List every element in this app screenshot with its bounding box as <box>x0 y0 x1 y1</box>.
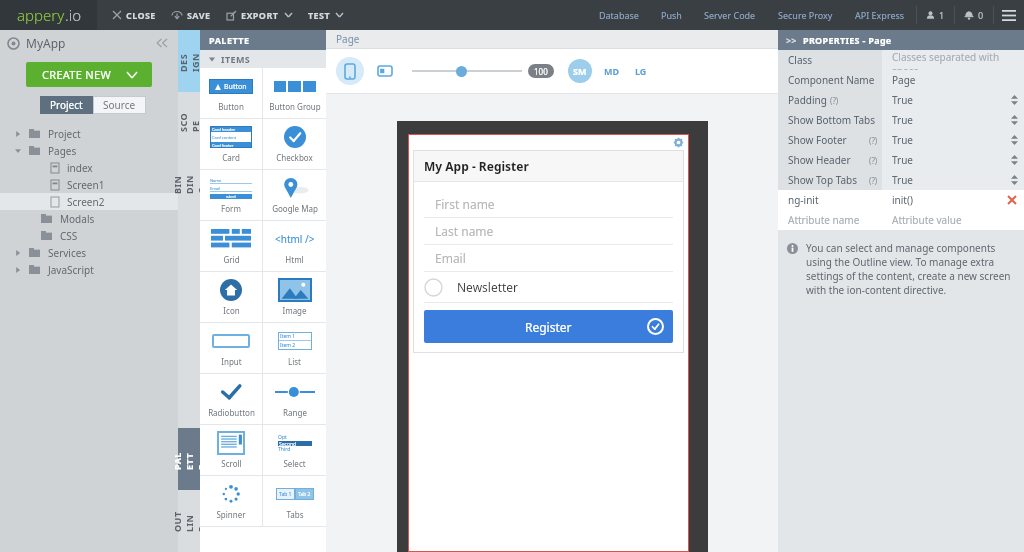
staticText: Component Name <box>788 73 875 87</box>
button[interactable]: Database <box>588 0 650 30</box>
button[interactable]: Project <box>0 125 178 142</box>
button[interactable]: Screen2 <box>0 193 178 210</box>
button[interactable]: Google Map <box>263 170 326 220</box>
button[interactable]: Tab 1 <box>263 476 326 526</box>
button[interactable]: Collapse <box>154 36 170 50</box>
button[interactable]: Spinner <box>200 476 262 526</box>
button[interactable]: Item 1 <box>263 323 326 373</box>
button[interactable]: OUTLINE <box>178 490 200 552</box>
button[interactable]: JavaScript <box>0 261 178 278</box>
button[interactable]: LG <box>632 62 650 80</box>
staticText: Checkbox <box>276 152 313 163</box>
button[interactable]: Source <box>93 96 146 114</box>
button[interactable]: Range <box>263 374 326 424</box>
staticText: Item 2 <box>280 342 296 349</box>
button[interactable]: First name <box>413 191 684 218</box>
button[interactable]: SM <box>568 59 592 83</box>
button[interactable]: BINDING <box>178 150 200 216</box>
button[interactable]: Button <box>200 68 262 118</box>
button[interactable]: CSS <box>0 227 178 244</box>
button[interactable]: Menu <box>994 0 1024 30</box>
staticText: Select <box>283 458 306 469</box>
button[interactable]: TEST <box>300 0 351 30</box>
button[interactable]: Card header <box>200 119 262 169</box>
staticText: Page <box>336 32 360 46</box>
staticText: Form <box>221 203 241 214</box>
button[interactable]: Classes separated with space <box>882 50 1024 70</box>
button[interactable]: Remove attribute <box>1008 196 1016 204</box>
button[interactable]: True <box>882 110 1024 130</box>
button[interactable]: Scroll <box>200 425 262 475</box>
button[interactable]: Portrait <box>336 57 364 85</box>
staticText: Database <box>599 9 639 21</box>
staticText: Project <box>48 127 81 141</box>
button[interactable]: Screen1 <box>0 176 178 193</box>
button[interactable]: PALETTE <box>178 428 200 490</box>
button[interactable]: EXPORT <box>219 0 300 30</box>
staticText: TEST <box>308 9 330 21</box>
staticText: Image <box>282 305 307 316</box>
button[interactable]: Server Code <box>693 0 767 30</box>
button[interactable]: Email <box>413 245 684 272</box>
button[interactable]: Icon <box>200 272 262 322</box>
button[interactable]: Pages <box>0 142 178 159</box>
button[interactable]: MD <box>601 62 623 80</box>
button[interactable]: True <box>882 170 1024 190</box>
button[interactable]: Checkbox <box>263 119 326 169</box>
staticText: Server Code <box>704 9 756 21</box>
staticText: Card footer <box>212 143 234 148</box>
button[interactable] <box>412 61 522 81</box>
staticText: Attribute name <box>788 213 860 227</box>
staticText: Grid <box>223 254 240 265</box>
button[interactable]: True <box>882 90 1024 110</box>
staticText: Tab 2 <box>298 491 311 498</box>
staticText: Services <box>48 246 87 260</box>
button[interactable]: Last name <box>413 218 684 245</box>
button[interactable]: True <box>882 130 1024 150</box>
staticText: (?) <box>869 135 878 146</box>
button[interactable]: Secure Proxy <box>767 0 844 30</box>
button[interactable]: Newsletter <box>424 272 673 302</box>
button[interactable]: Grid <box>200 221 262 271</box>
staticText: SM <box>573 65 587 77</box>
button[interactable]: Landscape <box>374 62 396 80</box>
button[interactable]: SAVE <box>164 0 219 30</box>
button[interactable]: <html /> <box>263 221 326 271</box>
button[interactable]: Image <box>263 272 326 322</box>
staticText: (?) <box>830 95 839 106</box>
button[interactable]: Page <box>882 70 1024 90</box>
staticText: Spinner <box>216 509 246 520</box>
staticText: Email <box>435 250 466 266</box>
staticText: Card <box>222 152 240 163</box>
button[interactable]: API Express <box>844 0 916 30</box>
button[interactable]: Input <box>200 323 262 373</box>
button[interactable]: 0 <box>955 0 993 30</box>
button[interactable]: ITEMS <box>200 50 326 68</box>
button[interactable]: index <box>0 159 178 176</box>
button[interactable]: CREATE NEW <box>26 62 152 87</box>
button[interactable]: DESIGN <box>178 30 200 92</box>
button[interactable]: Project <box>40 96 93 114</box>
button[interactable]: Push <box>650 0 693 30</box>
button[interactable]: Button Group <box>263 68 326 118</box>
button[interactable]: Settings <box>674 138 683 147</box>
button[interactable]: CLOSE <box>105 0 164 30</box>
button[interactable]: Opt <box>263 425 326 475</box>
staticText: Padding <box>788 93 827 107</box>
button[interactable]: SCOPE <box>178 92 200 150</box>
staticText: SAVE <box>187 9 211 21</box>
button[interactable]: Name <box>200 170 262 220</box>
button[interactable]: Services <box>0 244 178 261</box>
staticText: Radiobutton <box>208 407 255 418</box>
button[interactable]: True <box>882 150 1024 170</box>
button[interactable]: Modals <box>0 210 178 227</box>
staticText: True <box>892 93 914 107</box>
button[interactable]: Register <box>424 310 673 343</box>
button[interactable]: appery <box>0 0 97 30</box>
staticText: Modals <box>60 212 95 226</box>
button[interactable]: 1 <box>917 0 954 30</box>
button[interactable]: Radiobutton <box>200 374 262 424</box>
staticText: <html /> <box>275 232 315 246</box>
staticText: 0 <box>978 9 984 21</box>
staticText: .io <box>65 5 81 25</box>
